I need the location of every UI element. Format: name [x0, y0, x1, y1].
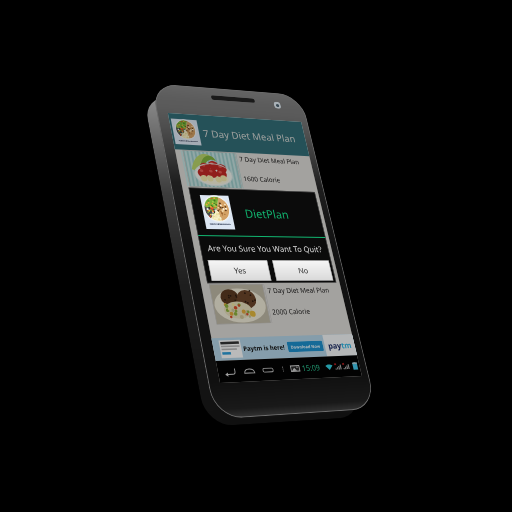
- staticText: No: [297, 265, 309, 276]
- button[interactable]: 7 Day Diet Meal Plan: [201, 283, 352, 338]
- staticText: 7 Day Diet Meal Plan: [238, 155, 300, 166]
- button[interactable]: Recent apps: [257, 359, 279, 381]
- button[interactable]: Download Now: [286, 341, 324, 352]
- staticText: 1600 Calorie: [242, 174, 281, 184]
- staticText: tm: [340, 340, 352, 351]
- button[interactable]: 7 Day Diet Meal Plan: [168, 113, 309, 156]
- staticText: 15:09: [301, 362, 321, 373]
- button[interactable]: Paytm is here!: [211, 334, 357, 361]
- staticText: Download Now: [290, 343, 321, 350]
- button[interactable]: Home: [238, 359, 260, 382]
- staticText: Are You Sure You Want To Quit?: [206, 242, 323, 255]
- staticText: 7 Day Diet Meal Plan: [266, 285, 330, 295]
- staticText: Paytm is here!: [242, 343, 285, 353]
- button[interactable]: More options: [272, 358, 294, 380]
- staticText: 1800 Calorie: [256, 239, 296, 248]
- staticText: 2000 Calorie: [271, 306, 311, 316]
- staticText: Yes: [233, 265, 247, 276]
- button[interactable]: No: [272, 260, 333, 281]
- staticText: DietPlan: [243, 205, 290, 222]
- staticText: 7 Day Diet Meal Plan: [202, 126, 297, 145]
- button[interactable]: 7 Day Diet Meal Plan: [188, 215, 340, 284]
- button[interactable]: 7 Day Diet Meal Plan: [175, 149, 324, 218]
- staticText: pay: [327, 340, 342, 351]
- button[interactable]: Yes: [208, 260, 271, 281]
- button[interactable]: Back: [219, 360, 241, 383]
